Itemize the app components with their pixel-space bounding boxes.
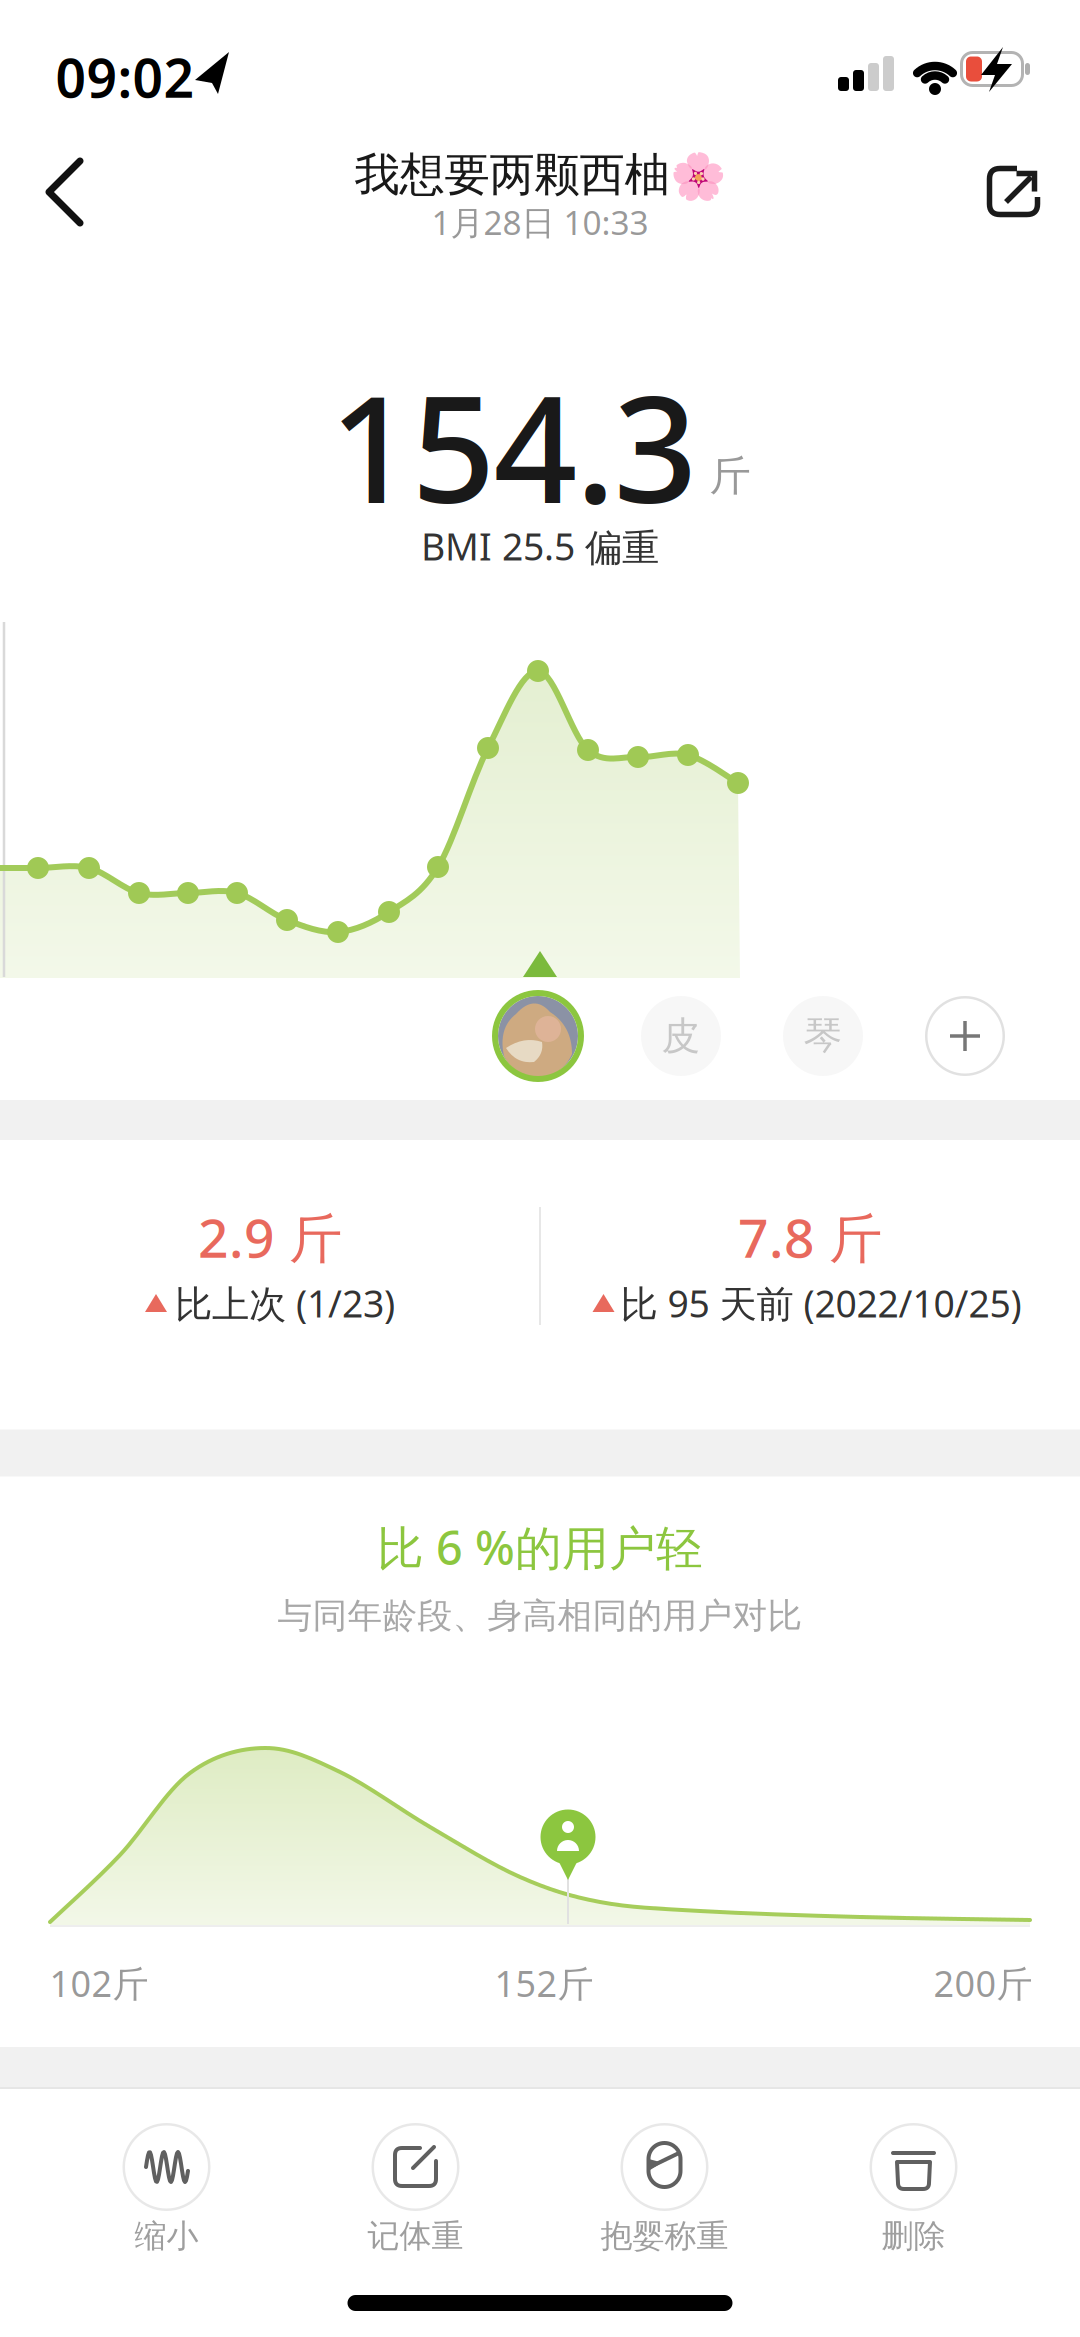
button[interactable]: Back [20,147,110,237]
staticText: 斤 [709,451,750,501]
button[interactable]: 删除 [789,2107,1038,2267]
staticText: 比 95 天前 (2022/10/25) [620,1278,1021,1328]
button[interactable]: 皮 [641,996,721,1076]
button[interactable]: 记体重 [291,2107,540,2267]
button[interactable]: 琴 [783,996,863,1076]
button[interactable]: 添加成员 [925,996,1005,1076]
staticText: 比 6 %的用户轻 [377,1516,703,1578]
staticText: 154.3 [329,349,697,543]
staticText: 记体重 [367,2216,463,2256]
button[interactable]: 缩小 [42,2107,291,2267]
button[interactable]: 当前用户 [492,990,584,1082]
staticText: 09:02 [55,42,194,112]
staticText: BMI 25.5 偏重 [421,521,659,571]
staticText: 抱婴称重 [600,2216,728,2256]
staticText: 皮 [661,1012,700,1060]
button[interactable]: 抱婴称重 [540,2107,789,2267]
staticText: 我想要两颗西柚🌸 [354,147,725,203]
staticText: 1月28日 10:33 [431,200,648,244]
button[interactable]: Share [967,145,1057,235]
staticText: 7.8 斤 [738,1202,882,1272]
staticText: 200斤 [933,1959,1032,2007]
staticText: 琴 [803,1012,842,1060]
staticText: 与同年龄段、身高相同的用户对比 [277,1595,802,1637]
staticText: 102斤 [49,1959,148,2007]
staticText: 比上次 (1/23) [175,1278,395,1328]
staticText: 缩小 [134,2216,198,2256]
staticText: 152斤 [494,1959,593,2007]
staticText: 2.9 斤 [198,1202,342,1272]
staticText: 删除 [881,2216,945,2256]
